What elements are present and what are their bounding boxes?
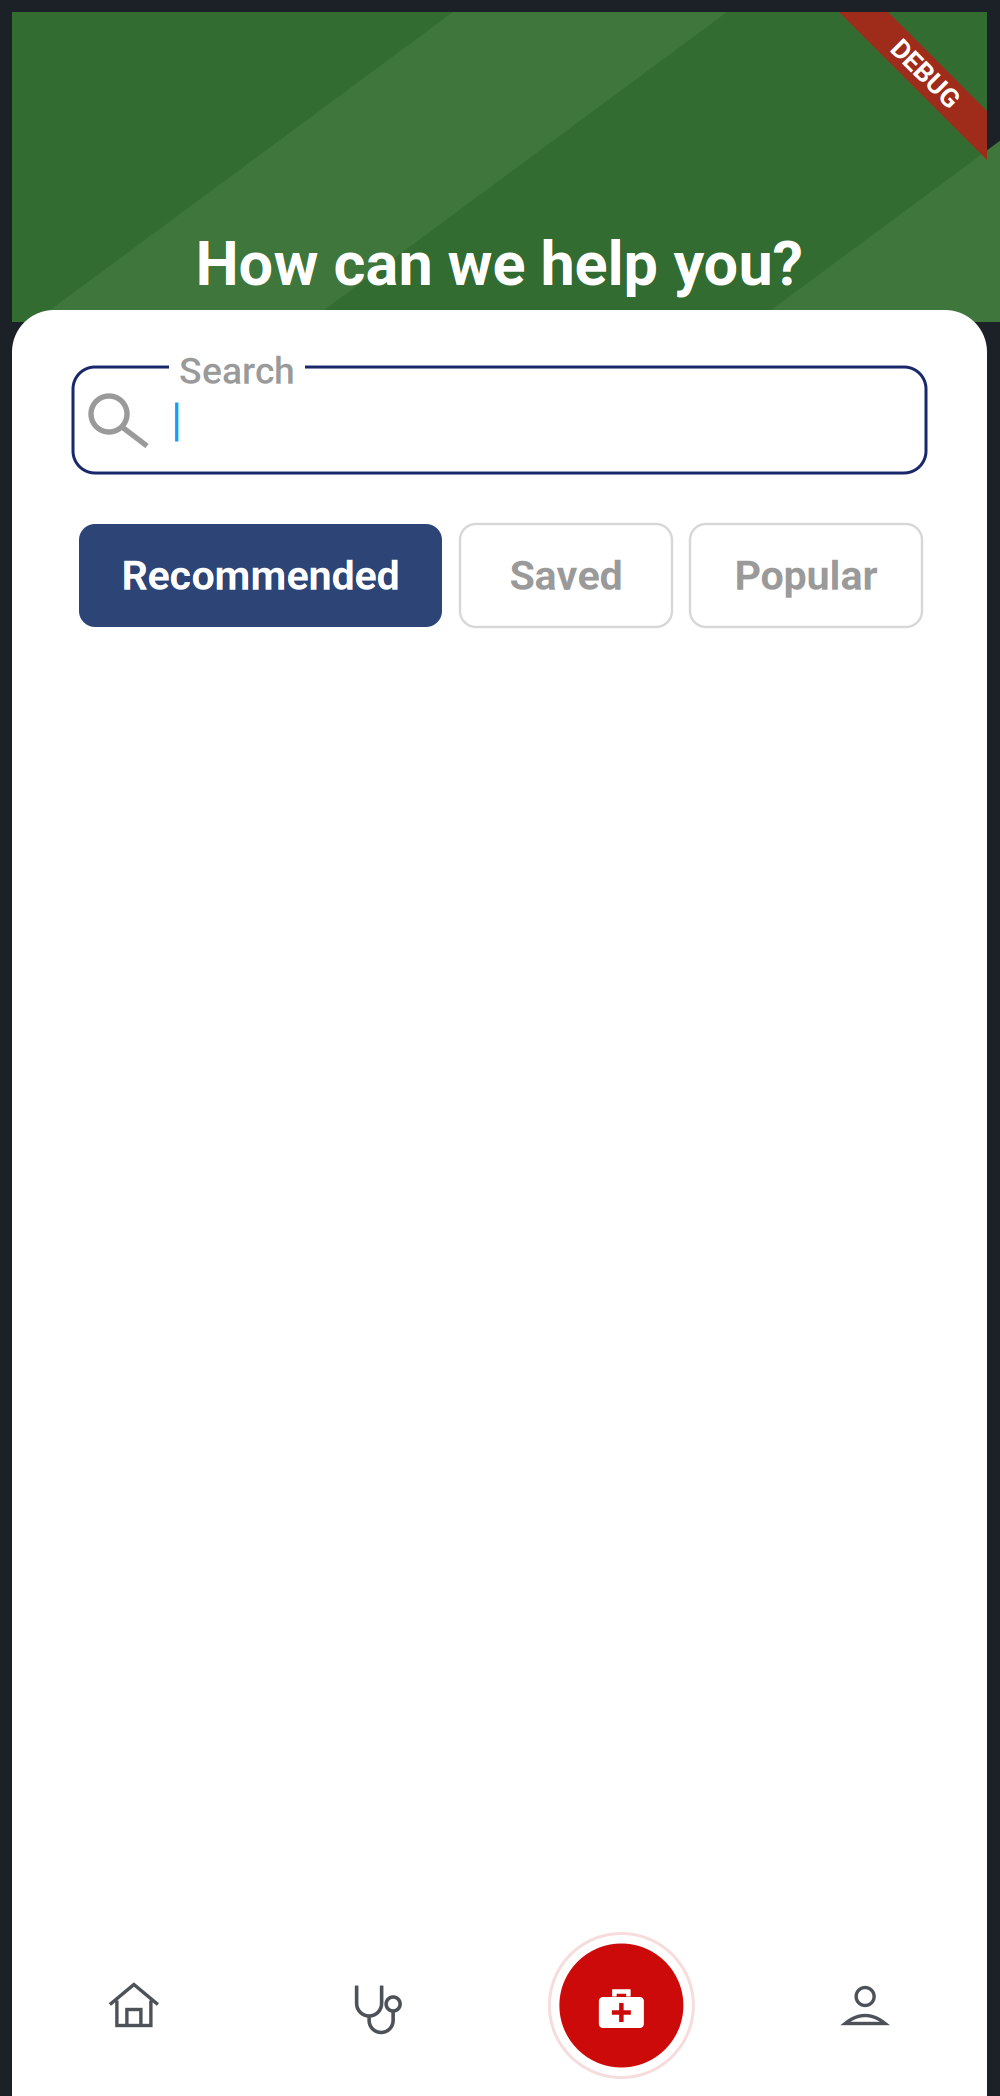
staticText: How can we help you? <box>195 228 803 300</box>
button[interactable]: Saved <box>460 524 672 627</box>
button[interactable]: Consultations <box>256 1915 500 2096</box>
button[interactable]: Recommended <box>79 524 442 627</box>
button[interactable]: Popular <box>690 524 922 627</box>
staticText: Popular <box>734 551 877 600</box>
button[interactable]: Profile <box>743 1915 987 2096</box>
button[interactable]: Emergency <box>499 1915 743 2096</box>
staticText: Saved <box>509 551 622 600</box>
staticText: Recommended <box>121 551 399 600</box>
button[interactable]: Home <box>12 1915 256 2096</box>
staticText: | <box>171 393 182 446</box>
staticText: Search <box>179 349 295 393</box>
staticText: DEBUG <box>883 58 968 89</box>
